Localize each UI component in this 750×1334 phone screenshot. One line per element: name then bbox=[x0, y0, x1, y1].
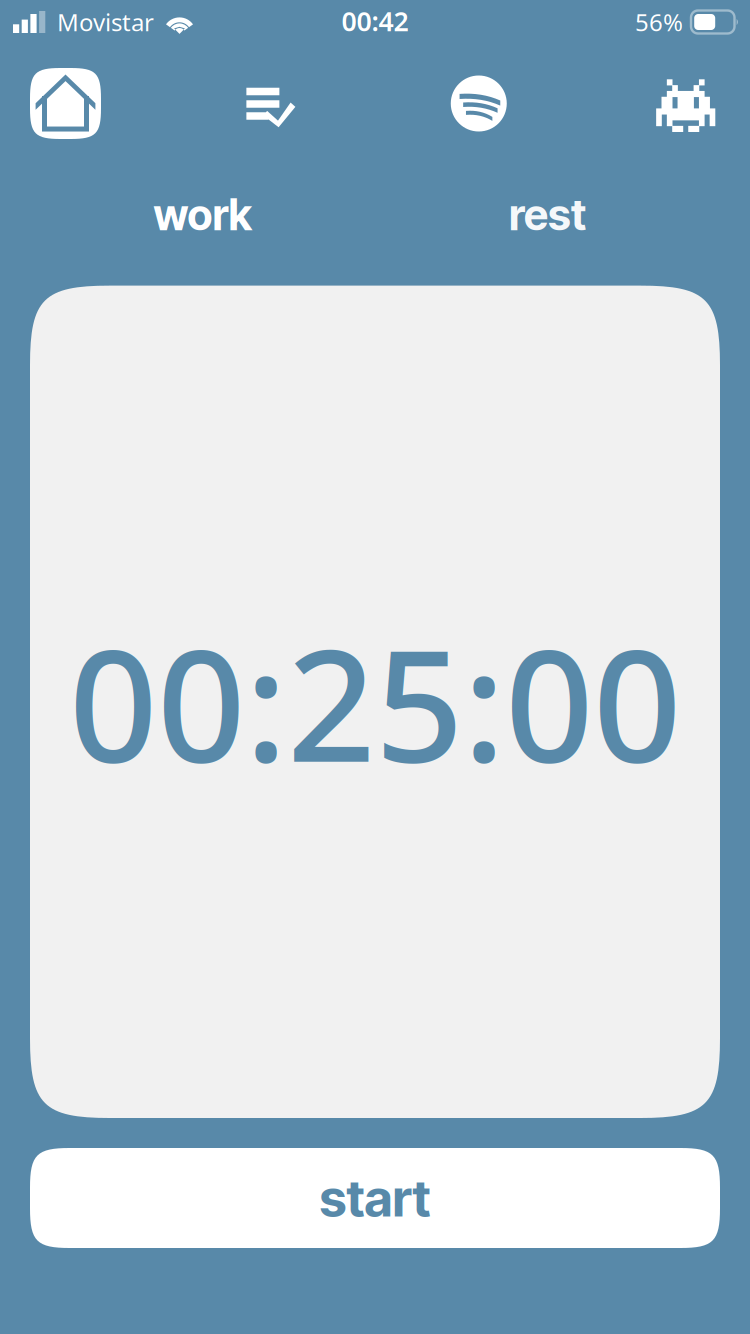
button[interactable]: Game bbox=[656, 79, 715, 132]
staticText: rest bbox=[509, 189, 586, 241]
button[interactable]: Tasks bbox=[246, 88, 295, 127]
button[interactable]: start bbox=[30, 1148, 720, 1248]
button[interactable]: rest bbox=[375, 189, 720, 241]
button[interactable]: work bbox=[30, 189, 375, 241]
staticText: 56% bbox=[635, 6, 683, 38]
staticText: Movistar bbox=[57, 6, 154, 38]
staticText: 00:42 bbox=[341, 3, 408, 39]
staticText: 00:25:00 bbox=[69, 599, 681, 804]
staticText: work bbox=[153, 189, 251, 241]
staticText: start bbox=[319, 1167, 430, 1229]
button[interactable]: Spotify bbox=[451, 75, 507, 131]
button[interactable]: Home bbox=[30, 68, 101, 139]
